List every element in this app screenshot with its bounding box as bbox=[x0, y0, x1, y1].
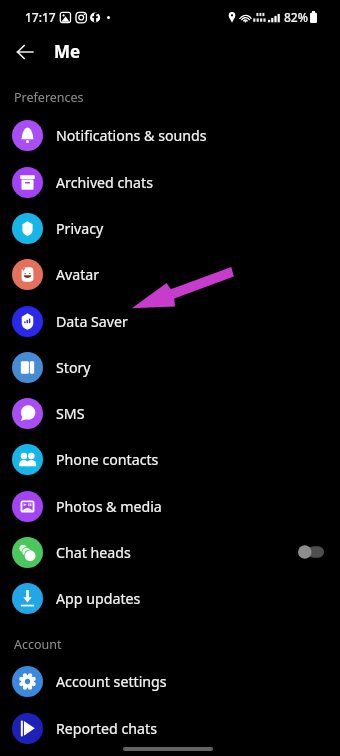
button[interactable]: Reported chats bbox=[0, 705, 340, 751]
button[interactable]: Photos & media bbox=[0, 483, 340, 529]
staticText: Chat heads bbox=[56, 543, 131, 562]
button[interactable]: Back bbox=[8, 34, 44, 70]
button[interactable]: Archived chats bbox=[0, 159, 340, 205]
staticText: Account settings bbox=[56, 672, 167, 691]
staticText: Photos & media bbox=[56, 497, 162, 516]
button[interactable]: Story bbox=[0, 344, 340, 390]
button[interactable]: Chat heads bbox=[0, 529, 340, 575]
staticText: Me bbox=[54, 40, 81, 63]
staticText: 17:17 bbox=[25, 9, 56, 25]
staticText: SMS bbox=[56, 404, 85, 423]
staticText: Archived chats bbox=[56, 173, 153, 192]
button[interactable]: Account settings bbox=[0, 658, 340, 704]
staticText: Privacy bbox=[56, 219, 104, 238]
staticText: Notifications & sounds bbox=[56, 126, 207, 145]
button[interactable]: Phone contacts bbox=[0, 436, 340, 482]
staticText: Phone contacts bbox=[56, 450, 159, 469]
staticText: Preferences bbox=[14, 89, 84, 106]
staticText: App updates bbox=[56, 589, 141, 608]
staticText: Data Saver bbox=[56, 312, 128, 331]
button[interactable]: Privacy bbox=[0, 205, 340, 251]
staticText: 82% bbox=[284, 9, 308, 25]
staticText: Avatar bbox=[56, 265, 100, 284]
button[interactable]: Avatar bbox=[0, 251, 340, 297]
button[interactable]: App updates bbox=[0, 575, 340, 621]
staticText: Account bbox=[14, 636, 62, 653]
button[interactable]: SMS bbox=[0, 390, 340, 436]
staticText: Story bbox=[56, 358, 91, 377]
staticText: Reported chats bbox=[56, 719, 157, 738]
button[interactable]: Data Saver bbox=[0, 298, 340, 344]
button[interactable]: Notifications & sounds bbox=[0, 112, 340, 158]
